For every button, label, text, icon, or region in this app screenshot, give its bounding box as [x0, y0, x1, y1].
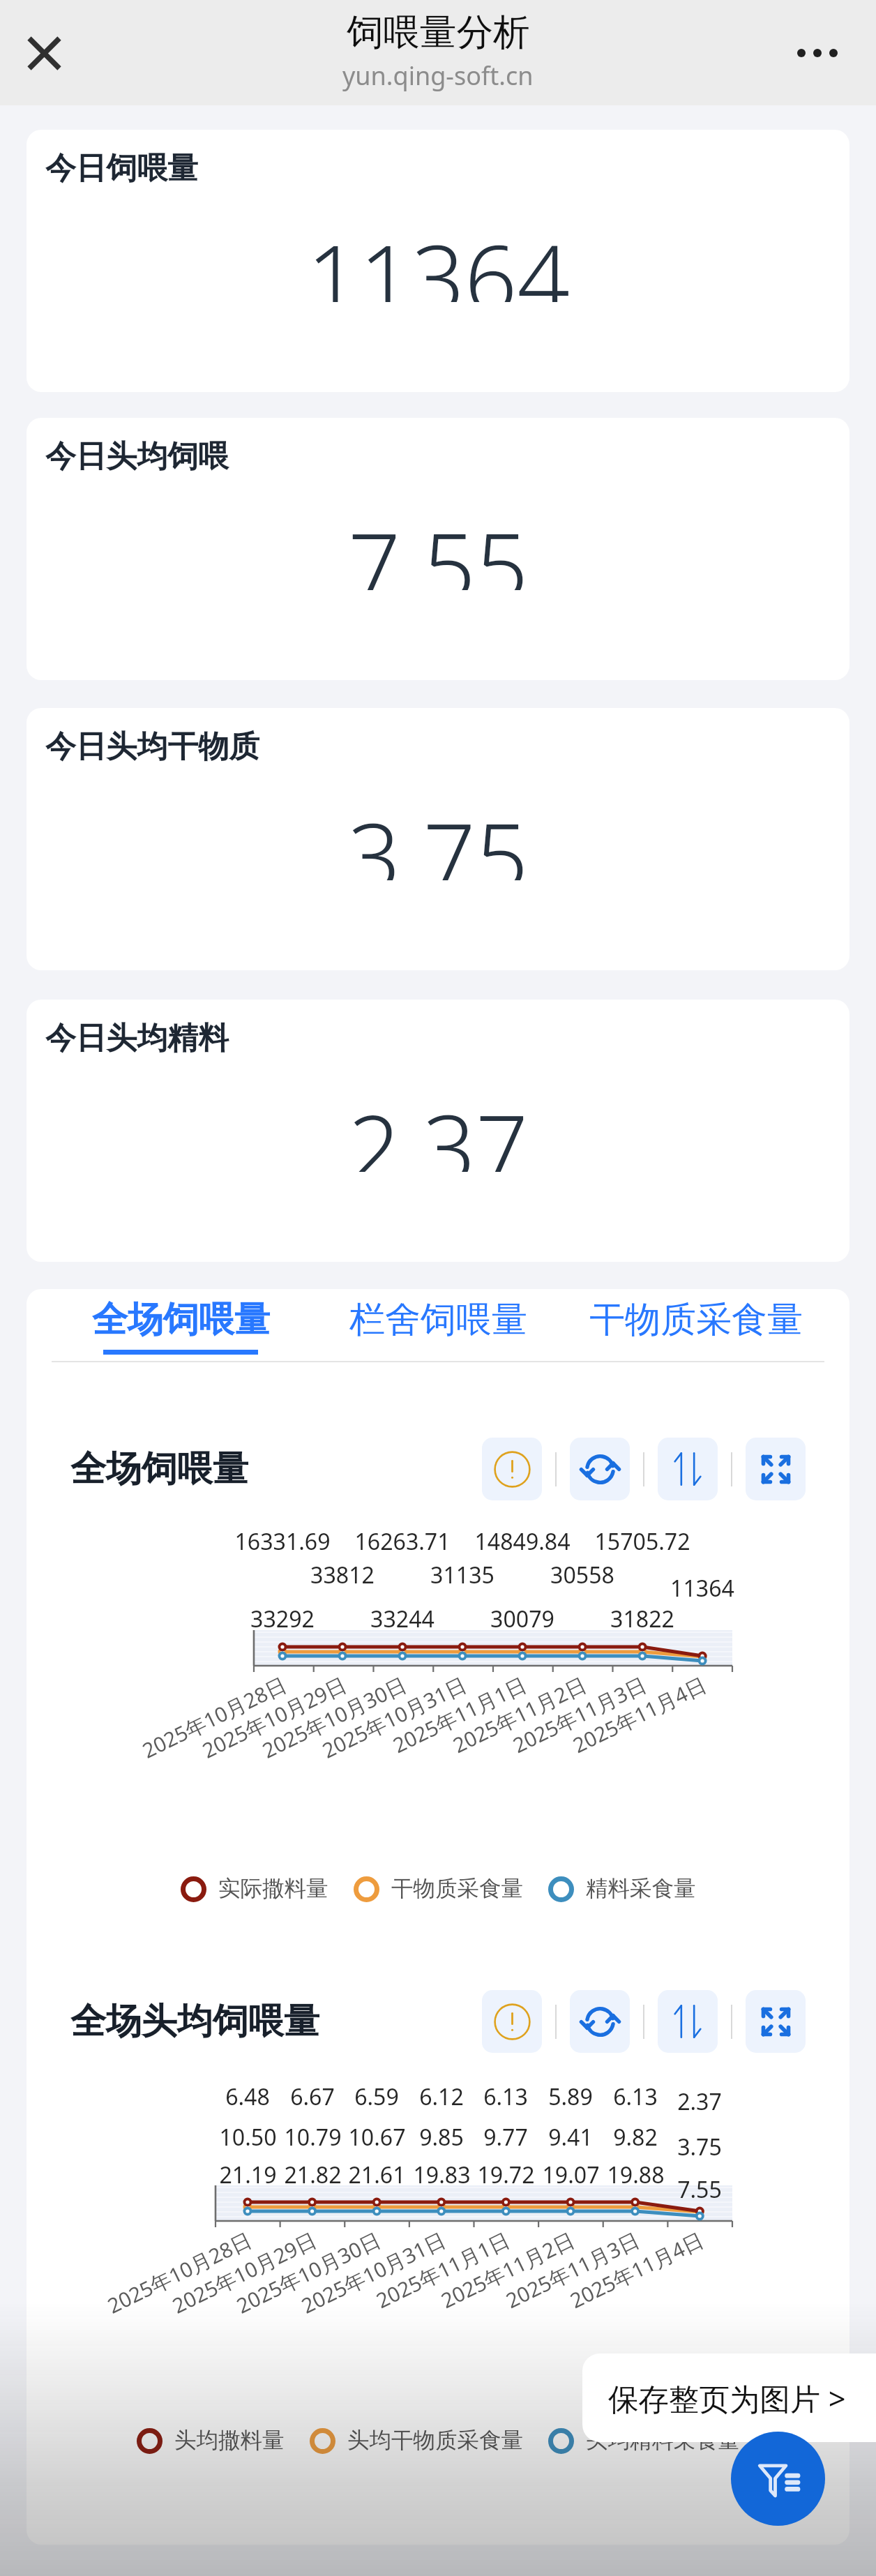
staticText: 15705.72: [594, 1526, 690, 1557]
staticText: 2025年11月4日: [565, 2225, 708, 2314]
button[interactable]: 今日头均干物质: [27, 708, 849, 970]
staticText: 2025年10月29日: [197, 1670, 351, 1764]
staticText: 干物质采食量: [391, 1875, 523, 1903]
staticText: 6.13: [613, 2081, 658, 2112]
button[interactable]: Expand: [746, 1990, 806, 2053]
staticText: 2025年11月2日: [436, 2225, 579, 2314]
staticText: 6.13: [483, 2081, 528, 2112]
button[interactable]: 今日饲喂量: [27, 130, 849, 392]
staticText: 全场头均饲喂量: [70, 1999, 319, 2044]
staticText: 2.37: [677, 2086, 722, 2117]
staticText: 30558: [550, 1560, 614, 1590]
staticText: 头均撒料量: [174, 2427, 285, 2455]
staticText: 2025年10月28日: [137, 1670, 291, 1764]
staticText: 今日饲喂量: [45, 149, 198, 188]
button[interactable]: Refresh: [570, 1438, 630, 1500]
button[interactable]: 干物质采食量: [567, 1289, 824, 1355]
staticText: 2025年11月1日: [388, 1670, 531, 1759]
staticText: 全场饲喂量: [92, 1297, 270, 1342]
staticText: yun.qing-soft.cn: [342, 59, 534, 93]
button[interactable]: Warning: [482, 1990, 542, 2053]
staticText: 7.55: [677, 2174, 722, 2205]
button[interactable]: Close: [0, 9, 88, 97]
staticText: 14849.84: [474, 1526, 571, 1557]
button[interactable]: 栏舍饲喂量: [310, 1289, 567, 1355]
staticText: 19.88: [607, 2160, 665, 2190]
staticText: 33244: [370, 1604, 435, 1634]
staticText: 干物质采食量: [589, 1297, 803, 1342]
staticText: 11364: [307, 214, 570, 302]
button[interactable]: Warning: [482, 1438, 542, 1500]
staticText: 6.12: [419, 2081, 464, 2112]
staticText: 饲喂量分析: [347, 9, 530, 55]
staticText: 33292: [250, 1604, 315, 1634]
button[interactable]: 今日头均饲喂: [27, 418, 849, 680]
staticText: 11364: [670, 1573, 734, 1604]
staticText: 2025年11月3日: [501, 2225, 644, 2314]
staticText: 33812: [310, 1560, 375, 1590]
staticText: 2025年10月31日: [317, 1670, 471, 1764]
staticText: 16263.71: [354, 1526, 451, 1557]
staticText: 7.55: [348, 502, 529, 590]
button[interactable]: 今日头均精料: [27, 1000, 849, 1262]
button[interactable]: 全场饲喂量: [52, 1289, 310, 1355]
staticText: 6.59: [354, 2081, 399, 2112]
staticText: 2025年10月30日: [257, 1670, 411, 1764]
staticText: 19.83: [413, 2160, 471, 2190]
button[interactable]: More options: [771, 7, 863, 99]
staticText: 2025年11月4日: [568, 1670, 711, 1759]
staticText: 9.82: [613, 2122, 658, 2153]
staticText: 今日头均精料: [45, 1019, 229, 1057]
button[interactable]: Sort: [658, 1990, 718, 2053]
staticText: 3.75: [677, 2132, 722, 2162]
staticText: 21.82: [284, 2160, 342, 2190]
staticText: 头均精料采食量: [586, 2427, 740, 2455]
staticText: 6.48: [225, 2081, 270, 2112]
staticText: 16331.69: [234, 1526, 331, 1557]
staticText: 2.37: [348, 1084, 529, 1172]
staticText: 10.67: [348, 2122, 406, 2153]
staticText: 实际撒料量: [218, 1875, 328, 1903]
staticText: 21.61: [348, 2160, 406, 2190]
button[interactable]: Sort: [658, 1438, 718, 1500]
staticText: 6.67: [290, 2081, 335, 2112]
staticText: 2025年11月2日: [448, 1670, 591, 1759]
staticText: 9.41: [548, 2122, 593, 2153]
staticText: 2025年11月1日: [371, 2225, 514, 2314]
button[interactable]: 保存整页为图片 >: [582, 2353, 876, 2442]
button[interactable]: Expand: [746, 1438, 806, 1500]
staticText: 精料采食量: [586, 1875, 696, 1903]
staticText: 9.77: [483, 2122, 528, 2153]
staticText: 19.72: [477, 2160, 535, 2190]
staticText: 10.79: [284, 2122, 342, 2153]
staticText: 2025年10月30日: [232, 2225, 385, 2320]
staticText: 全场饲喂量: [70, 1447, 248, 1491]
staticText: 21.19: [219, 2160, 277, 2190]
staticText: 保存整页为图片 >: [608, 2377, 846, 2418]
button[interactable]: Filter: [731, 2432, 825, 2526]
staticText: 2025年10月28日: [103, 2225, 256, 2320]
staticText: 19.07: [542, 2160, 600, 2190]
staticText: 今日头均饲喂: [45, 437, 229, 476]
staticText: 今日头均干物质: [45, 728, 259, 766]
staticText: 头均干物质采食量: [347, 2427, 523, 2455]
staticText: 栏舍饲喂量: [349, 1297, 527, 1342]
button[interactable]: Refresh: [570, 1990, 630, 2053]
staticText: 31135: [430, 1560, 494, 1590]
staticText: 2025年11月3日: [508, 1670, 651, 1759]
staticText: 31822: [610, 1604, 674, 1634]
staticText: 9.85: [419, 2122, 464, 2153]
staticText: 30079: [490, 1604, 554, 1634]
staticText: 5.89: [548, 2081, 593, 2112]
staticText: 2025年10月29日: [167, 2225, 321, 2320]
staticText: 10.50: [219, 2122, 277, 2153]
staticText: 2025年10月31日: [296, 2225, 450, 2320]
staticText: 3.75: [348, 792, 529, 880]
